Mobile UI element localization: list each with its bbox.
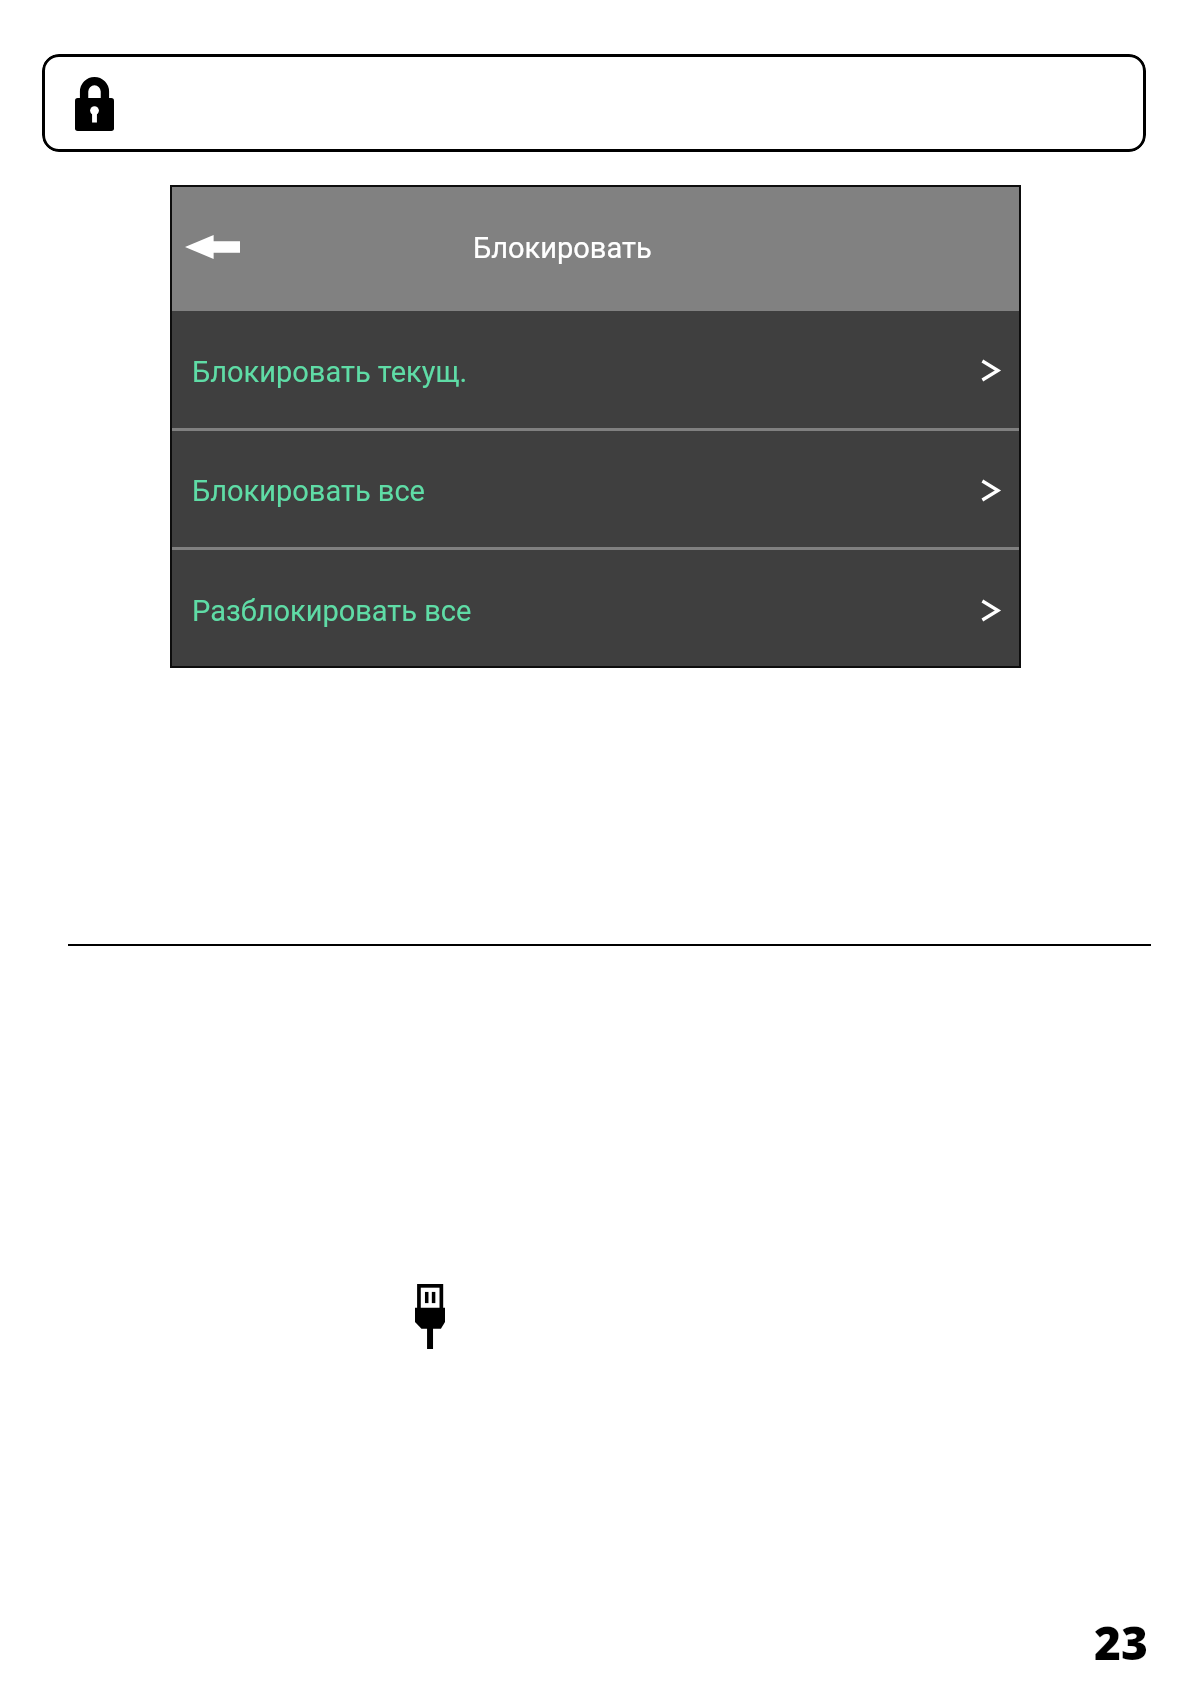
staticText: Разблокировать все — [192, 594, 472, 628]
staticText: Блокировать — [473, 231, 652, 265]
button[interactable]: Разблокировать все — [170, 550, 1021, 668]
button[interactable]: Back — [174, 212, 250, 282]
staticText: 23 — [1094, 1611, 1148, 1674]
staticText: Блокировать все — [192, 474, 425, 508]
button[interactable]: Блокировать все — [170, 431, 1021, 547]
button[interactable]: Блокировать текущ. — [170, 311, 1021, 428]
staticText: Блокировать текущ. — [192, 355, 468, 389]
